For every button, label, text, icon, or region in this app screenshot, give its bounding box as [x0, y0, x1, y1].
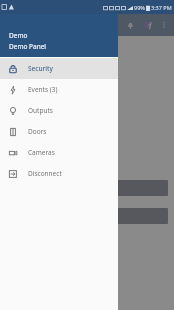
staticText: Doors	[28, 127, 47, 136]
staticText: Outputs	[28, 106, 53, 115]
button[interactable]	[6, 208, 168, 224]
button[interactable]: Events (3)	[0, 79, 118, 100]
staticText: Demo	[9, 31, 28, 40]
staticText: Demo Panel	[9, 42, 47, 51]
button[interactable]: Disconnect	[0, 163, 118, 184]
staticText: Events (3)	[28, 85, 58, 94]
staticText: 3:37 PM	[151, 4, 172, 11]
staticText: Security	[28, 64, 53, 73]
staticText: Cameras	[28, 148, 55, 157]
staticText: 99%	[134, 4, 145, 11]
button[interactable]	[6, 180, 168, 196]
button[interactable]: Cameras	[0, 142, 118, 163]
button[interactable]: Alerts	[139, 16, 157, 34]
button[interactable]: Outputs	[0, 100, 118, 121]
button[interactable]: Notifications	[121, 16, 139, 34]
button[interactable]: Doors	[0, 121, 118, 142]
button[interactable]: Security	[0, 58, 118, 79]
staticText: Disconnect	[28, 169, 62, 178]
button[interactable]: More options	[157, 18, 171, 32]
